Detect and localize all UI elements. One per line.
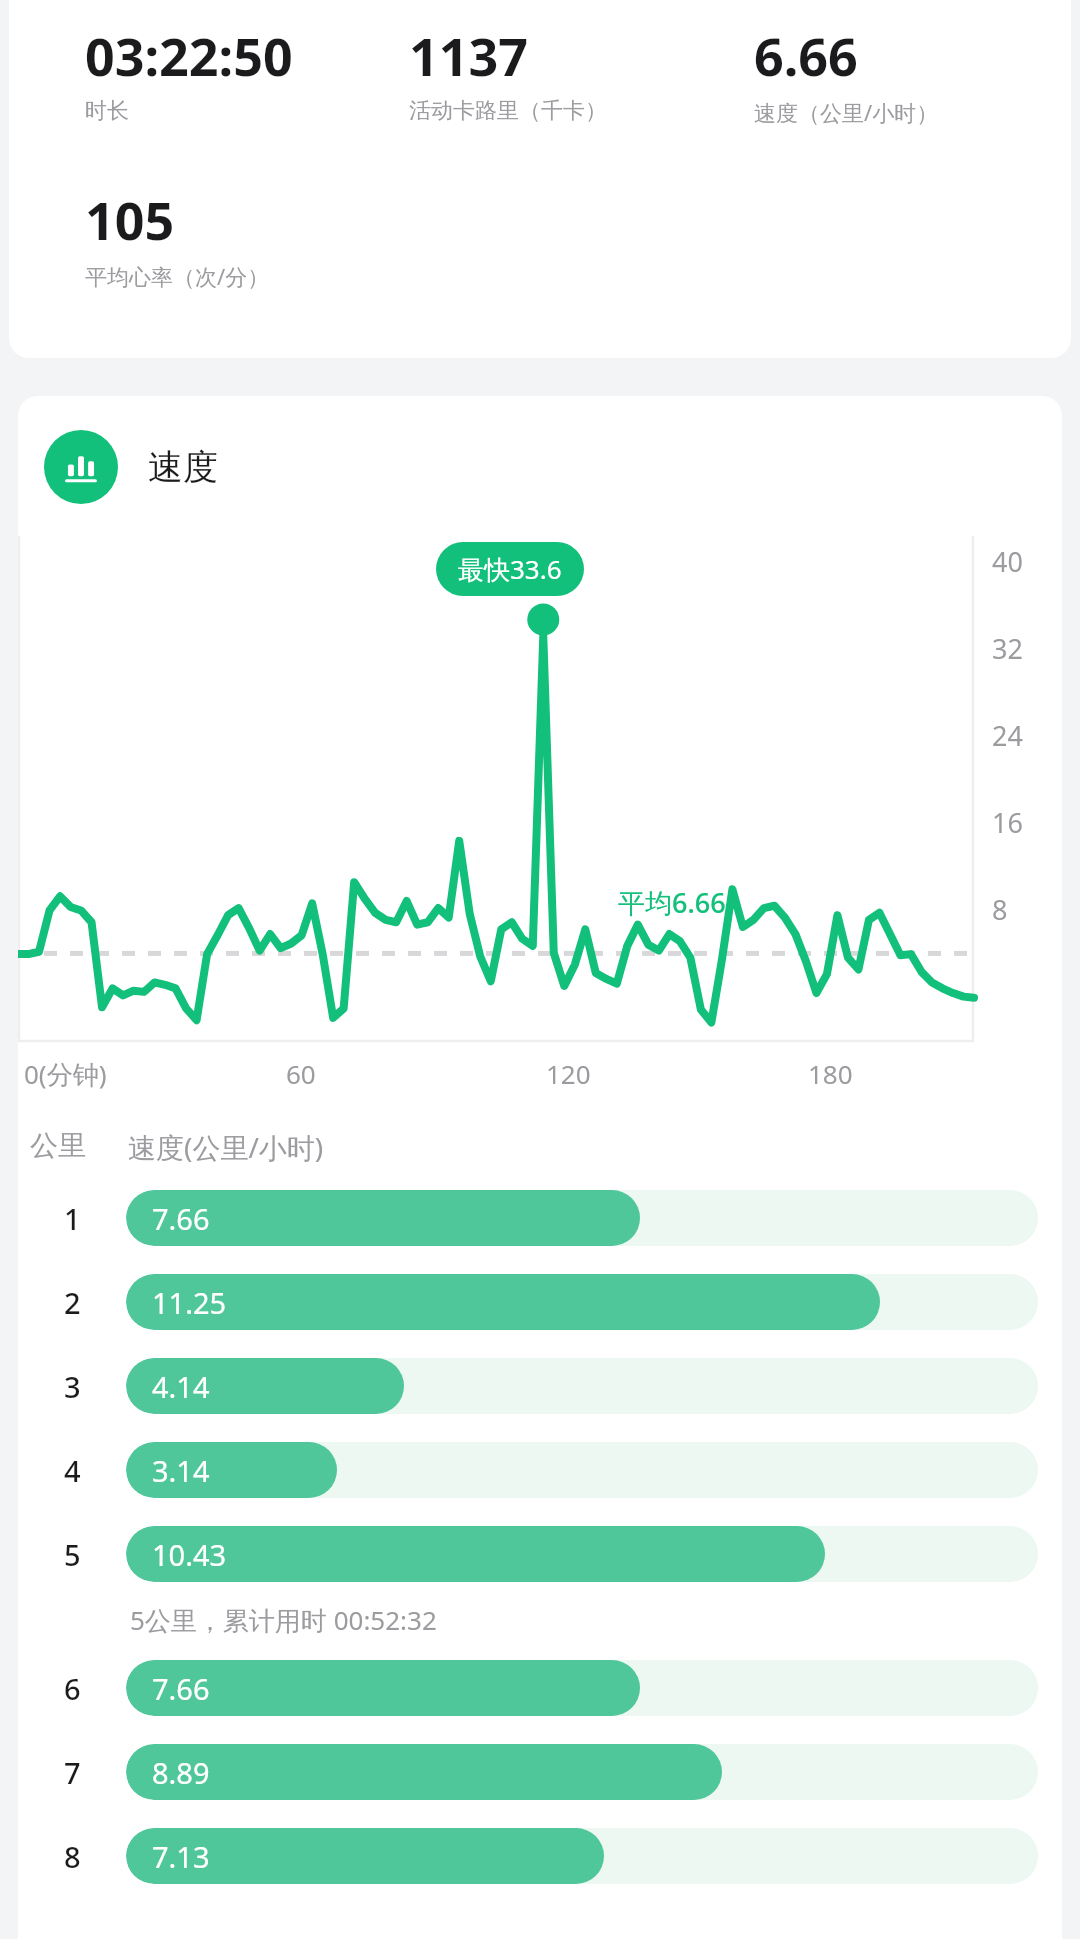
staticText: 平均6.66	[618, 884, 726, 921]
button[interactable]: 3	[18, 1344, 1062, 1428]
staticText: 24	[992, 717, 1023, 754]
staticText: 180	[808, 1056, 853, 1091]
staticText: 平均心率（次/分）	[85, 261, 270, 291]
staticText: 6	[64, 1669, 81, 1708]
staticText: 60	[286, 1056, 316, 1091]
staticText: 3.14	[152, 1451, 210, 1490]
staticText: 4.14	[152, 1367, 210, 1406]
staticText: 速度（公里/小时）	[754, 97, 939, 127]
staticText: 7.66	[152, 1669, 210, 1708]
staticText: 120	[546, 1056, 591, 1091]
staticText: 5公里，累计用时 00:52:32	[130, 1602, 437, 1638]
staticText: 105	[85, 184, 175, 255]
staticText: 0(分钟)	[24, 1056, 107, 1092]
staticText: 1137	[409, 20, 528, 91]
staticText: 3	[64, 1367, 81, 1406]
button[interactable]: 2	[18, 1260, 1062, 1344]
button[interactable]: 4	[18, 1428, 1062, 1512]
staticText: 11.25	[152, 1283, 227, 1322]
staticText: 时长	[85, 97, 129, 125]
button[interactable]: 1	[18, 1176, 1062, 1260]
staticText: 1	[64, 1199, 81, 1238]
staticText: 最快33.6	[458, 551, 562, 587]
staticText: 6.66	[754, 20, 858, 91]
staticText: 2	[64, 1283, 81, 1322]
button[interactable]: Speed chart	[18, 426, 1062, 508]
staticText: 8	[992, 891, 1008, 928]
staticText: 03:22:50	[85, 20, 293, 91]
button[interactable]: 7	[18, 1730, 1062, 1814]
staticText: 4	[64, 1451, 81, 1490]
staticText: 32	[992, 630, 1023, 667]
other: Speed chart	[44, 430, 118, 504]
staticText: 速度	[148, 445, 218, 489]
staticText: 10.43	[152, 1535, 227, 1574]
staticText: 活动卡路里（千卡）	[409, 97, 607, 125]
button[interactable]: 6	[18, 1646, 1062, 1730]
staticText: 16	[992, 804, 1023, 841]
staticText: 公里	[30, 1128, 86, 1163]
staticText: 7.13	[152, 1837, 210, 1876]
staticText: 8.89	[152, 1753, 210, 1792]
staticText: 40	[992, 543, 1023, 580]
staticText: 7	[64, 1753, 81, 1792]
button[interactable]: 8	[18, 1814, 1062, 1898]
staticText: 7.66	[152, 1199, 210, 1238]
staticText: 5	[64, 1535, 81, 1574]
button[interactable]: 5	[18, 1512, 1062, 1596]
staticText: 速度(公里/小时)	[128, 1128, 324, 1166]
staticText: 8	[64, 1837, 81, 1876]
